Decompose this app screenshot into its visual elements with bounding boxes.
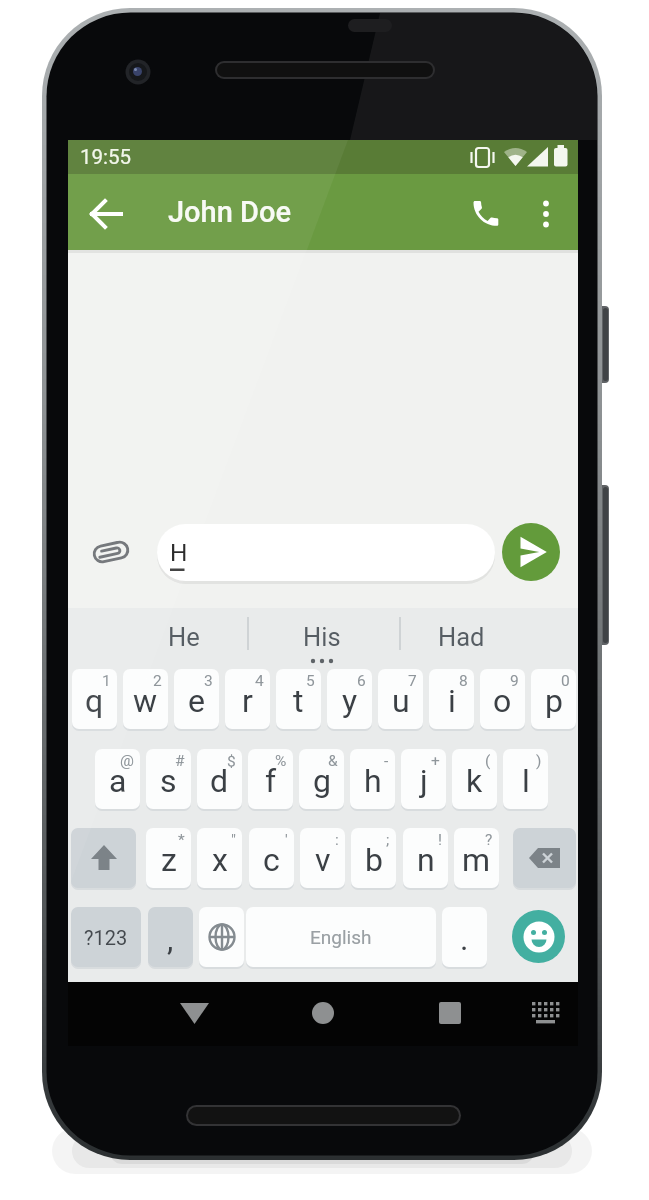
staticText: s — [160, 762, 177, 800]
button[interactable] — [199, 907, 244, 967]
button[interactable] — [513, 828, 576, 888]
button[interactable] — [82, 188, 130, 236]
staticText: ! — [438, 831, 442, 849]
button[interactable]: z — [146, 828, 191, 888]
button[interactable]: i — [429, 669, 474, 729]
staticText: 7 — [408, 672, 417, 690]
button[interactable] — [168, 984, 223, 1044]
staticText: : — [335, 831, 339, 849]
button[interactable]: . — [442, 907, 487, 967]
staticText: 1 — [102, 672, 111, 690]
button[interactable]: ?123 — [71, 907, 141, 967]
staticText: x — [212, 841, 228, 879]
button[interactable]: t — [276, 669, 321, 729]
staticText: His — [303, 622, 341, 652]
staticText: Had — [438, 622, 485, 652]
staticText: % — [275, 752, 287, 770]
staticText: ) — [536, 752, 542, 770]
staticText: t — [293, 682, 304, 720]
staticText: ( — [485, 752, 491, 770]
staticText: * — [178, 831, 185, 849]
button[interactable]: c — [249, 828, 294, 888]
staticText: H — [170, 538, 188, 567]
staticText: # — [175, 752, 185, 770]
staticText: ' — [285, 831, 288, 849]
button[interactable]: He — [102, 612, 266, 662]
staticText: r — [242, 682, 253, 720]
staticText: z — [161, 841, 177, 879]
button[interactable]: q — [72, 669, 117, 729]
staticText: , — [167, 920, 174, 958]
button[interactable]: v — [300, 828, 345, 888]
staticText: l — [522, 762, 530, 800]
button[interactable] — [512, 910, 565, 963]
button[interactable]: His — [248, 612, 396, 662]
staticText: k — [466, 762, 483, 800]
button[interactable] — [88, 529, 134, 575]
staticText: ; — [386, 831, 390, 849]
button[interactable]: w — [123, 669, 168, 729]
button[interactable] — [296, 984, 351, 1044]
staticText: ?123 — [84, 926, 128, 949]
staticText: . — [460, 920, 469, 958]
staticText: & — [328, 752, 338, 770]
button[interactable]: o — [480, 669, 525, 729]
staticText: y — [342, 682, 358, 720]
staticText: 5 — [306, 672, 315, 690]
staticText: $ — [227, 752, 236, 770]
staticText: e — [188, 682, 205, 720]
button[interactable]: English — [246, 907, 436, 967]
staticText: g — [313, 762, 331, 800]
button[interactable]: H — [157, 524, 495, 581]
staticText: - — [384, 752, 389, 770]
staticText: 19:55 — [80, 145, 132, 169]
button[interactable]: p — [531, 669, 576, 729]
button[interactable]: f — [248, 749, 293, 809]
staticText: m — [462, 841, 491, 879]
staticText: He — [168, 622, 200, 652]
button[interactable] — [526, 188, 570, 240]
staticText: ? — [485, 831, 493, 849]
button[interactable]: s — [146, 749, 191, 809]
staticText: 2 — [153, 672, 162, 690]
staticText: 8 — [459, 672, 468, 690]
button[interactable]: g — [299, 749, 344, 809]
button[interactable] — [518, 984, 568, 1044]
button[interactable] — [458, 188, 510, 240]
button[interactable] — [423, 984, 478, 1044]
staticText: 3 — [204, 672, 213, 690]
button[interactable]: h — [350, 749, 395, 809]
button[interactable]: b — [351, 828, 396, 888]
button[interactable]: n — [403, 828, 448, 888]
staticText: 6 — [357, 672, 366, 690]
staticText: b — [365, 841, 383, 879]
button[interactable]: e — [174, 669, 219, 729]
button[interactable]: k — [452, 749, 497, 809]
staticText: j — [420, 762, 428, 800]
button[interactable]: a — [95, 749, 140, 809]
button[interactable]: , — [148, 907, 193, 967]
staticText: f — [265, 762, 277, 800]
staticText: o — [493, 682, 512, 720]
staticText: c — [263, 841, 280, 879]
button[interactable]: y — [327, 669, 372, 729]
button[interactable]: m — [454, 828, 499, 888]
staticText: n — [417, 841, 435, 879]
button[interactable]: r — [225, 669, 270, 729]
staticText: + — [431, 752, 440, 770]
staticText: John Doe — [168, 195, 292, 229]
button[interactable]: l — [503, 749, 548, 809]
button[interactable]: u — [378, 669, 423, 729]
staticText: q — [85, 682, 104, 720]
button[interactable]: j — [401, 749, 446, 809]
button[interactable] — [502, 523, 560, 581]
staticText: w — [133, 682, 158, 720]
button[interactable]: Had — [400, 612, 522, 662]
staticText: u — [392, 682, 410, 720]
button[interactable] — [71, 828, 136, 888]
staticText: " — [231, 831, 236, 849]
button[interactable]: x — [197, 828, 242, 888]
staticText: @ — [120, 752, 134, 770]
staticText: v — [315, 841, 331, 879]
button[interactable]: d — [197, 749, 242, 809]
